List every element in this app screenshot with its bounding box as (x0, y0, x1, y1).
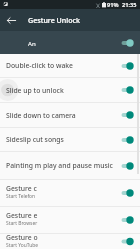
staticText: Sideslip cut songs (6, 135, 120, 144)
button[interactable]: Sideslip cut songs (0, 128, 140, 151)
button[interactable]: An (0, 31, 140, 54)
button[interactable]: Gesture c (0, 180, 140, 206)
button[interactable]: Back (0, 9, 22, 31)
button[interactable]: Painting m play and pause music (0, 152, 140, 179)
staticText: Gesture o (6, 233, 38, 242)
staticText: Slide up to unlock (6, 86, 120, 95)
button[interactable]: Slide down to camera (0, 103, 140, 127)
staticText: 91% (107, 1, 119, 9)
staticText: Start Telefon (6, 193, 36, 200)
staticText: Start YouTube (6, 242, 39, 248)
button[interactable]: Double-click to wake (0, 54, 140, 77)
staticText: An (28, 39, 140, 47)
staticText: Start Browser (6, 220, 38, 227)
staticText: Gesture Unlock (28, 15, 80, 25)
staticText: Painting m play and pause music (6, 161, 120, 170)
staticText: Gesture c (6, 184, 37, 193)
staticText: Double-click to wake (6, 61, 120, 70)
staticText: Gesture e (6, 211, 38, 220)
staticText: 21:35 (122, 1, 137, 9)
button[interactable]: Gesture e (0, 207, 140, 233)
button[interactable]: Slide up to unlock (0, 78, 140, 102)
button[interactable]: Gesture o (0, 234, 140, 249)
staticText: Slide down to camera (6, 111, 120, 120)
